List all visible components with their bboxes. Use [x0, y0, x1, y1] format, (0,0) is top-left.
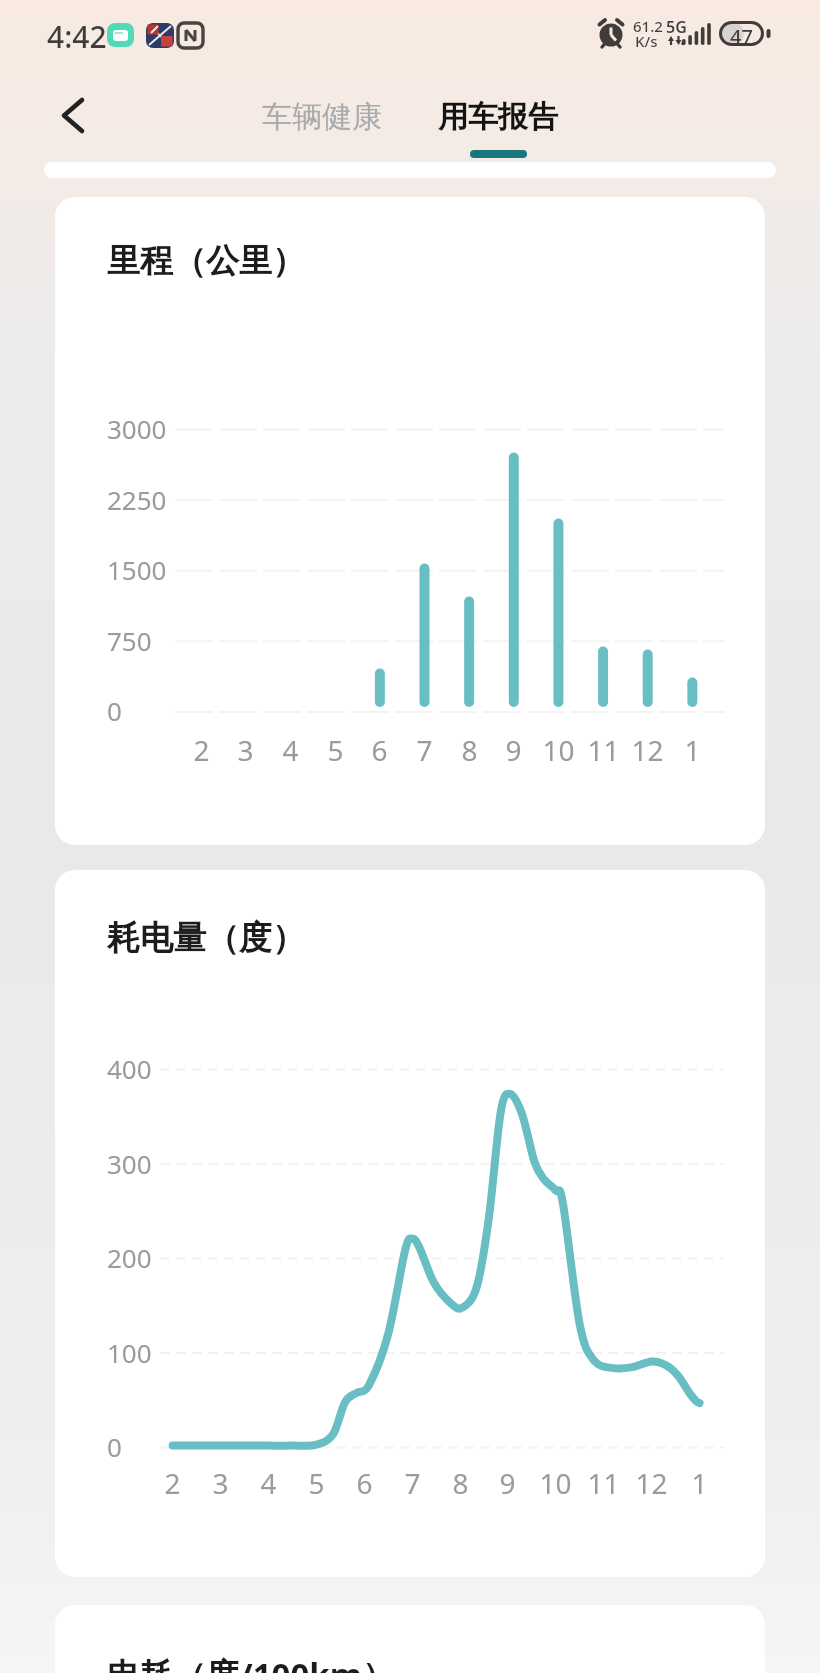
button[interactable]: [55, 197, 765, 845]
staticText: 电耗（度/100km）: [107, 1652, 395, 1673]
staticText: K/s: [635, 31, 658, 51]
staticText: 11: [587, 1464, 620, 1502]
staticText: 200: [107, 1240, 152, 1275]
staticText: 5G: [666, 16, 687, 38]
staticText: 100: [107, 1335, 152, 1370]
staticText: 300: [107, 1146, 152, 1181]
staticText: 2: [164, 1464, 181, 1502]
staticText: 5: [327, 731, 344, 769]
staticText: 7: [416, 731, 433, 769]
staticText: 里程（公里）: [107, 240, 305, 282]
staticText: 750: [107, 623, 152, 658]
staticText: 6: [356, 1464, 373, 1502]
staticText: 12: [631, 731, 664, 769]
staticText: 1500: [107, 552, 167, 587]
staticText: 12: [635, 1464, 668, 1502]
staticText: 3: [237, 731, 254, 769]
staticText: 4:42: [47, 16, 107, 57]
staticText: 2: [193, 731, 210, 769]
staticText: 8: [461, 731, 478, 769]
staticText: 1: [684, 731, 701, 769]
staticText: 8: [452, 1464, 469, 1502]
staticText: 车辆健康: [262, 98, 382, 136]
staticText: 3: [212, 1464, 229, 1502]
staticText: 9: [505, 731, 522, 769]
staticText: 0: [107, 693, 122, 728]
staticText: 10: [539, 1464, 572, 1502]
staticText: 400: [107, 1051, 152, 1086]
staticText: 61.2: [633, 16, 663, 36]
button[interactable]: [55, 870, 765, 1577]
staticText: 7: [404, 1464, 421, 1502]
staticText: 5: [308, 1464, 325, 1502]
staticText: 2250: [107, 482, 167, 517]
staticText: 47: [730, 23, 753, 50]
staticText: 用车报告: [438, 98, 558, 136]
button[interactable]: 用车报告: [398, 95, 598, 139]
staticText: 6: [371, 731, 388, 769]
staticText: 4: [282, 731, 299, 769]
button[interactable]: [50, 92, 94, 136]
staticText: 9: [499, 1464, 516, 1502]
button[interactable]: 车辆健康: [222, 95, 422, 139]
staticText: 4: [260, 1464, 277, 1502]
staticText: 0: [107, 1429, 122, 1464]
staticText: 耗电量（度）: [107, 917, 305, 959]
button[interactable]: [55, 1605, 765, 1673]
staticText: 11: [587, 731, 620, 769]
staticText: 1: [691, 1464, 708, 1502]
staticText: 10: [542, 731, 575, 769]
staticText: 3000: [107, 411, 167, 446]
